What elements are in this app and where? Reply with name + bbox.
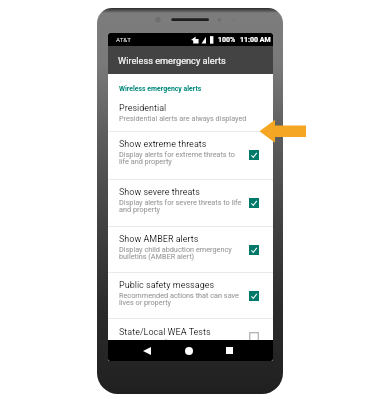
staticText: Display child abduction emergency bullet…	[119, 245, 242, 261]
button[interactable]: Back	[135, 343, 158, 358]
staticText: AT&T	[116, 36, 131, 43]
staticText: Show extreme threats	[119, 139, 207, 150]
staticText: Presidential	[119, 103, 167, 114]
staticText: 11:00 AM	[240, 36, 271, 44]
button[interactable]: Enabled	[249, 245, 259, 255]
staticText: Wireless emergency alerts	[118, 55, 226, 66]
button[interactable]: Enabled	[249, 291, 259, 301]
staticText: State/Local WEA Tests	[119, 327, 211, 338]
staticText: Display alerts for extreme threats to li…	[119, 150, 242, 166]
button[interactable]: Wireless emergency alerts	[108, 46, 273, 74]
button[interactable]: Show AMBER alerts	[108, 227, 273, 272]
staticText: Receive tests from state and local autho…	[119, 338, 242, 349]
staticText: Show severe threats	[119, 187, 200, 198]
staticText: Public safety messages	[119, 280, 215, 291]
other: Pointer	[0, 0, 380, 400]
button[interactable]: Show severe threats	[108, 180, 273, 226]
button[interactable]: Show extreme threats	[108, 132, 273, 179]
button[interactable]: Public safety messages	[108, 273, 273, 318]
staticText: Wireless emergency alerts	[119, 85, 202, 93]
staticText: Show AMBER alerts	[119, 234, 199, 245]
button[interactable]: Recent apps	[218, 343, 241, 358]
button[interactable]: Home	[177, 343, 200, 358]
button[interactable]: State/Local WEA Tests	[108, 319, 273, 341]
button[interactable]: Enabled	[249, 150, 259, 160]
button[interactable]: Presidential	[108, 96, 273, 131]
button[interactable]: Disabled	[249, 332, 259, 342]
staticText: Display alerts for severe threats to lif…	[119, 198, 242, 214]
staticText: Presidential alerts are always displayed	[119, 114, 247, 123]
staticText: 100%	[218, 36, 236, 44]
button[interactable]: Enabled	[249, 198, 259, 208]
staticText: Recommended actions that can save lives …	[119, 291, 242, 307]
